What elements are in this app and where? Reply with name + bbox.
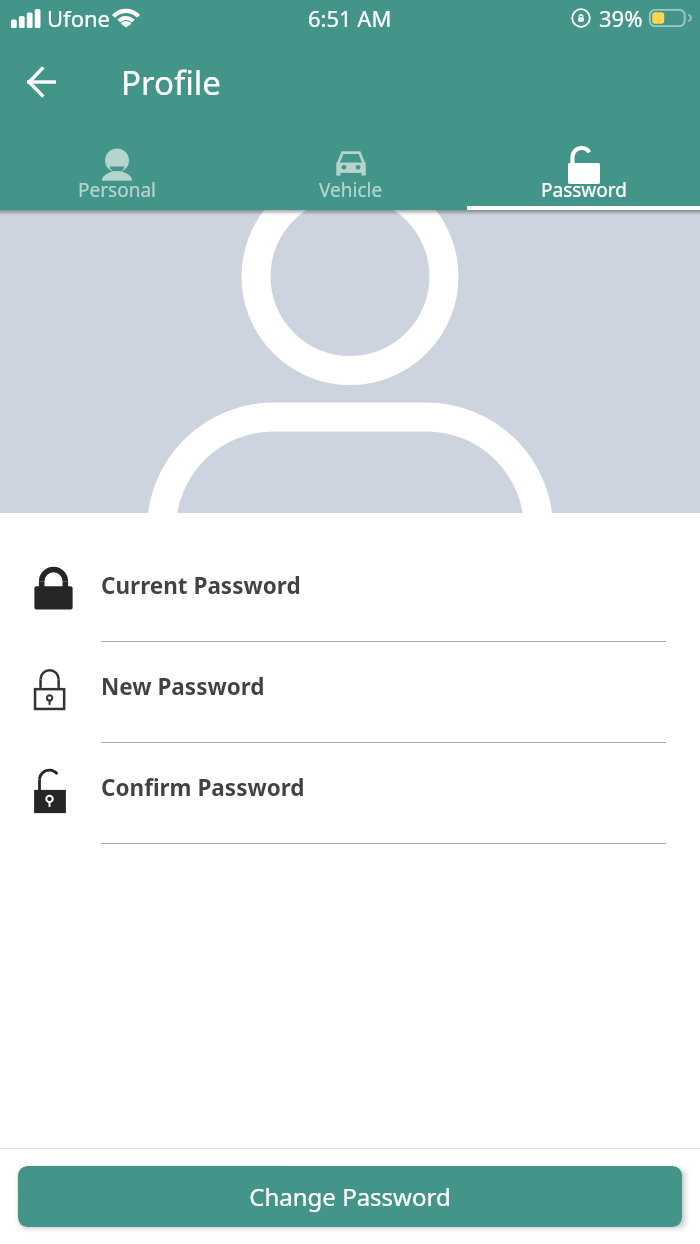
button[interactable]: Change Password (18, 1166, 682, 1227)
button[interactable]: New Password (0, 642, 700, 743)
staticText: Ufone (47, 3, 110, 33)
button[interactable]: Current Password (0, 541, 700, 642)
button[interactable]: Confirm Password (0, 743, 700, 844)
staticText: Vehicle (319, 177, 383, 203)
staticText: Personal (78, 177, 156, 203)
staticText: Profile (121, 60, 221, 105)
button[interactable]: Password (467, 118, 700, 210)
staticText: Confirm Password (101, 772, 305, 803)
staticText: 6:51 AM (308, 3, 392, 33)
button[interactable]: Personal (0, 118, 234, 210)
staticText: Change Password (249, 1180, 451, 1213)
staticText: New Password (101, 671, 265, 702)
staticText: Password (541, 177, 627, 203)
button[interactable]: Vehicle (234, 118, 467, 210)
button[interactable]: Back (10, 51, 72, 113)
staticText: 39% (599, 3, 643, 33)
staticText: Current Password (101, 570, 301, 601)
